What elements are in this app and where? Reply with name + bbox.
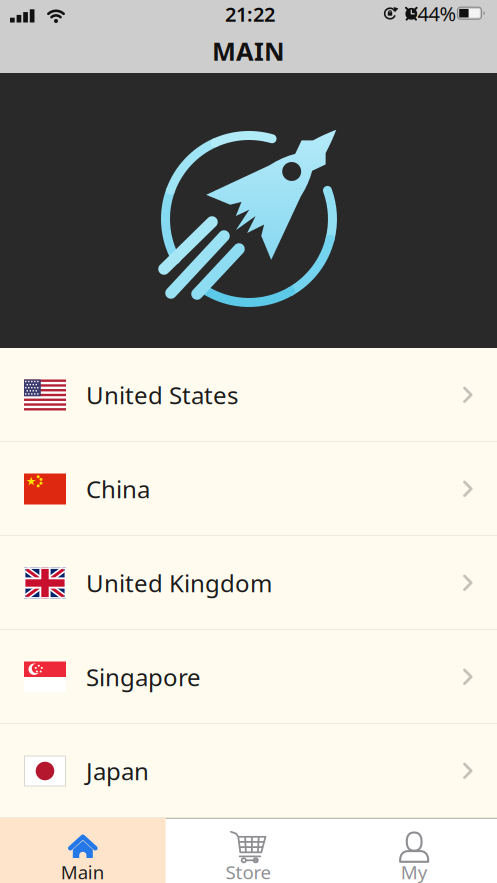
- staticText: 21:22: [225, 1, 275, 27]
- button[interactable]: Singapore: [0, 630, 497, 724]
- staticText: Singapore: [86, 661, 201, 693]
- staticText: Japan: [86, 755, 149, 787]
- button[interactable]: United States: [0, 348, 497, 442]
- button[interactable]: Store: [166, 818, 331, 883]
- button[interactable]: United Kingdom: [0, 536, 497, 630]
- button[interactable]: Main: [0, 818, 166, 883]
- staticText: Store: [225, 860, 271, 883]
- staticText: United Kingdom: [86, 567, 272, 599]
- button[interactable]: China: [0, 442, 497, 536]
- button[interactable]: My: [331, 818, 497, 883]
- staticText: 44%: [417, 0, 456, 27]
- staticText: China: [86, 473, 150, 505]
- button[interactable]: Japan: [0, 724, 497, 818]
- staticText: United States: [86, 379, 238, 411]
- staticText: Main: [61, 860, 105, 883]
- staticText: MAIN: [212, 34, 285, 68]
- staticText: My: [401, 860, 428, 883]
